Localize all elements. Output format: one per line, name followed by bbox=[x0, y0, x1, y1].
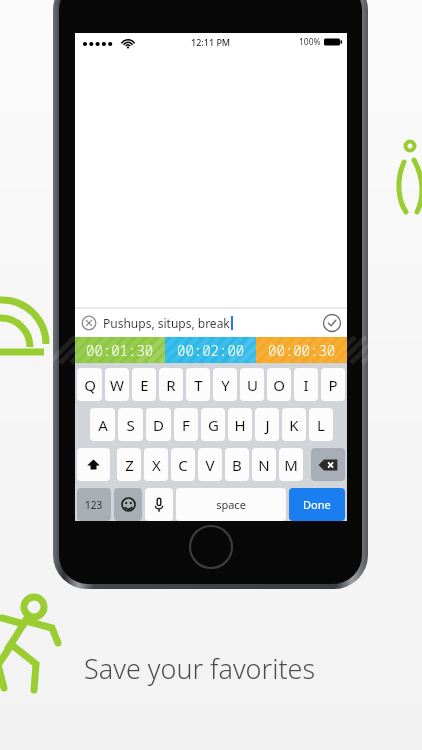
button[interactable]: L bbox=[309, 408, 333, 441]
button[interactable]: G bbox=[201, 408, 225, 441]
staticText: Done bbox=[303, 497, 331, 512]
button[interactable]: F bbox=[174, 408, 198, 441]
button[interactable]: O bbox=[267, 368, 291, 401]
staticText: 100% bbox=[299, 36, 321, 48]
staticText: Z bbox=[125, 455, 134, 475]
staticText: L bbox=[317, 415, 325, 435]
button[interactable]: 123 bbox=[77, 488, 111, 521]
staticText: T bbox=[194, 375, 203, 395]
staticText: E bbox=[140, 375, 149, 395]
button[interactable]: K bbox=[282, 408, 306, 441]
button[interactable]: T bbox=[186, 368, 210, 401]
button[interactable]: Clear bbox=[75, 308, 347, 337]
staticText: K bbox=[289, 415, 299, 435]
button[interactable]: Done bbox=[289, 488, 345, 521]
staticText: space bbox=[216, 497, 246, 512]
staticText: Y bbox=[221, 375, 230, 395]
staticText: J bbox=[265, 415, 270, 435]
staticText: B bbox=[232, 455, 242, 475]
other: Home bbox=[188, 524, 234, 570]
staticText: 00:00:30 bbox=[268, 341, 336, 360]
button[interactable]: A bbox=[90, 408, 115, 441]
button[interactable]: Q bbox=[77, 368, 102, 401]
button[interactable]: space bbox=[176, 488, 286, 521]
button[interactable]: Backspace bbox=[311, 448, 345, 481]
button[interactable]: Confirm bbox=[322, 313, 342, 333]
button[interactable]: C bbox=[171, 448, 195, 481]
staticText: D bbox=[153, 415, 164, 435]
button[interactable]: 00:00:30 bbox=[256, 337, 347, 363]
staticText: Save your favorites bbox=[84, 650, 316, 687]
staticText: R bbox=[166, 375, 176, 395]
button[interactable]: H bbox=[228, 408, 252, 441]
button[interactable]: R bbox=[159, 368, 183, 401]
button[interactable]: Shift bbox=[77, 448, 110, 481]
button[interactable]: Clear bbox=[80, 314, 98, 332]
button[interactable]: Y bbox=[213, 368, 237, 401]
staticText: M bbox=[284, 455, 298, 475]
staticText: N bbox=[258, 455, 270, 475]
staticText: H bbox=[234, 415, 246, 435]
button[interactable]: U bbox=[240, 368, 264, 401]
button[interactable]: P bbox=[321, 368, 345, 401]
staticText: 123 bbox=[85, 498, 103, 512]
staticText: F bbox=[182, 415, 190, 435]
staticText: X bbox=[152, 455, 161, 475]
staticText: Pushups, situps, break bbox=[103, 315, 230, 331]
button[interactable]: I bbox=[294, 368, 318, 401]
button[interactable]: N bbox=[252, 448, 276, 481]
staticText: G bbox=[208, 415, 219, 435]
staticText: A bbox=[98, 415, 108, 435]
button[interactable]: W bbox=[105, 368, 129, 401]
button[interactable]: 00:01:30 bbox=[75, 337, 165, 363]
button[interactable]: Dictation bbox=[145, 488, 173, 521]
button[interactable]: J bbox=[255, 408, 279, 441]
button[interactable]: D bbox=[146, 408, 171, 441]
staticText: O bbox=[273, 375, 285, 395]
staticText: C bbox=[178, 455, 188, 475]
button[interactable]: B bbox=[225, 448, 249, 481]
staticText: 00:01:30 bbox=[86, 341, 154, 360]
staticText: U bbox=[247, 375, 258, 395]
staticText: W bbox=[110, 375, 124, 395]
button[interactable]: 00:02:00 bbox=[165, 337, 256, 363]
button[interactable]: S bbox=[118, 408, 143, 441]
button[interactable]: M bbox=[279, 448, 303, 481]
staticText: V bbox=[205, 455, 215, 475]
staticText: 00:02:00 bbox=[177, 341, 245, 360]
staticText: S bbox=[126, 415, 135, 435]
button[interactable]: X bbox=[144, 448, 168, 481]
button[interactable]: E bbox=[132, 368, 156, 401]
button[interactable]: V bbox=[198, 448, 222, 481]
button[interactable]: Emoji bbox=[114, 488, 142, 521]
staticText: Q bbox=[84, 375, 96, 395]
button[interactable]: Z bbox=[117, 448, 141, 481]
staticText: I bbox=[303, 375, 309, 395]
staticText: P bbox=[328, 375, 338, 395]
staticText: 12:11 PM bbox=[191, 36, 231, 48]
